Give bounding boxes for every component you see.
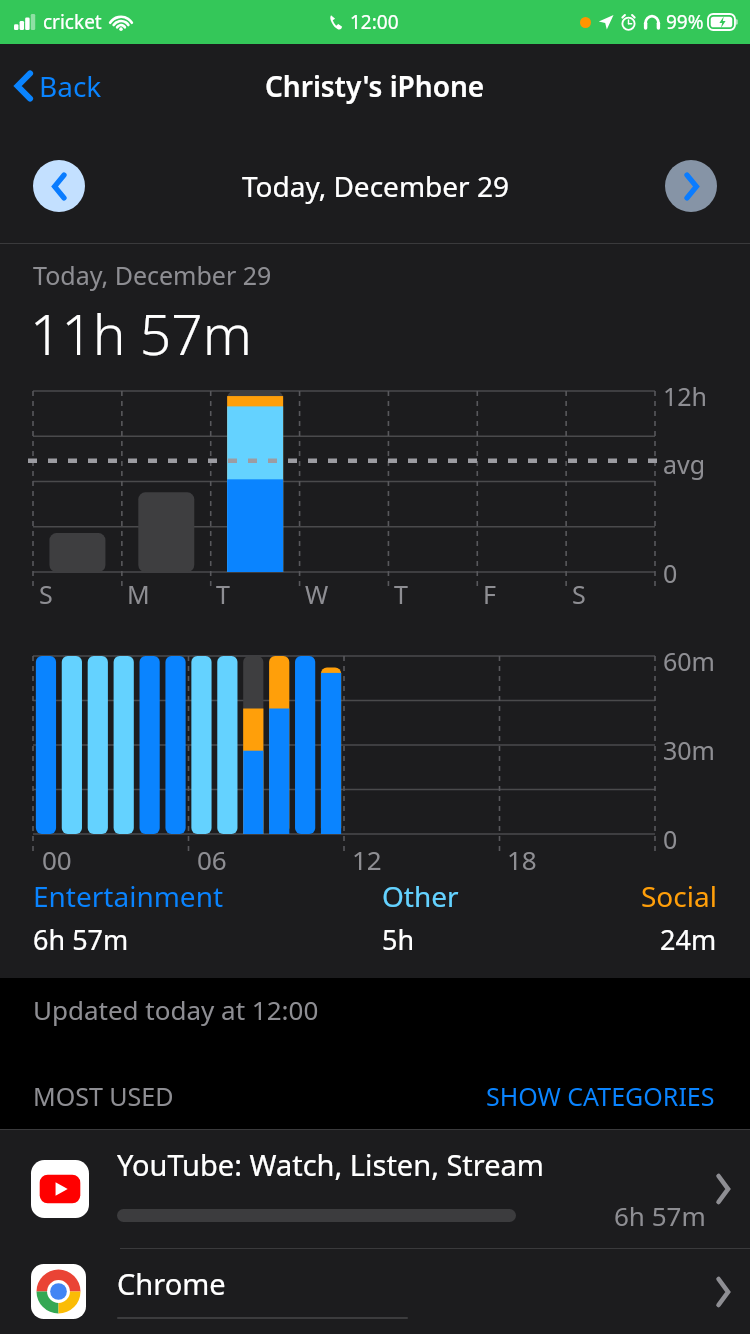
staticText: 0 [663, 556, 678, 590]
staticText: 24m [660, 921, 717, 958]
staticText: Today, December 29 [33, 258, 272, 292]
staticText: MOST USED [33, 1079, 174, 1113]
button[interactable]: Back [0, 57, 118, 115]
staticText: W [305, 577, 329, 611]
staticText: F [483, 577, 496, 611]
staticText: 60m [663, 644, 715, 678]
staticText: SHOW CATEGORIES [486, 1079, 715, 1113]
staticText: 6h 57m [33, 921, 129, 958]
staticText: YouTube: Watch, Listen, Stream [117, 1145, 544, 1184]
staticText: 06 [197, 842, 227, 877]
staticText: S [572, 577, 586, 611]
staticText: 6h 57m [614, 1198, 706, 1233]
staticText: 99% [666, 9, 704, 35]
other: Open YouTube: Watch, Listen, Stream deta… [716, 1176, 730, 1202]
staticText: Back [39, 67, 102, 105]
staticText: 00 [42, 842, 72, 877]
staticText: Chrome [117, 1264, 226, 1303]
staticText: 12:00 [350, 9, 399, 35]
staticText: Updated today at 12:00 [33, 992, 319, 1027]
button[interactable]: Chrome [0, 1249, 750, 1334]
staticText: 18 [507, 842, 537, 877]
button[interactable]: YouTube: Watch, Listen, Stream [0, 1130, 750, 1248]
button[interactable]: SHOW CATEGORIES [482, 1075, 719, 1117]
staticText: M [127, 577, 150, 611]
staticText: 30m [663, 733, 715, 767]
staticText: Christy's iPhone [265, 67, 485, 105]
staticText: Social [641, 877, 717, 915]
staticText: Entertainment [33, 877, 224, 915]
other: Open Chrome details [716, 1279, 730, 1305]
staticText: 12h [663, 379, 708, 413]
staticText: T [394, 577, 408, 611]
staticText: T [216, 577, 230, 611]
staticText: Other [382, 877, 459, 915]
staticText: cricket [43, 9, 102, 35]
staticText: 5h [382, 921, 415, 958]
button[interactable]: Previous day [33, 160, 85, 212]
staticText: 12 [352, 842, 382, 877]
button[interactable]: Next day [665, 160, 717, 212]
staticText: avg [663, 447, 706, 481]
staticText: Today, December 29 [242, 167, 509, 205]
staticText: 0 [663, 822, 678, 856]
staticText: S [39, 577, 53, 611]
staticText: 11h 57m [30, 296, 252, 371]
